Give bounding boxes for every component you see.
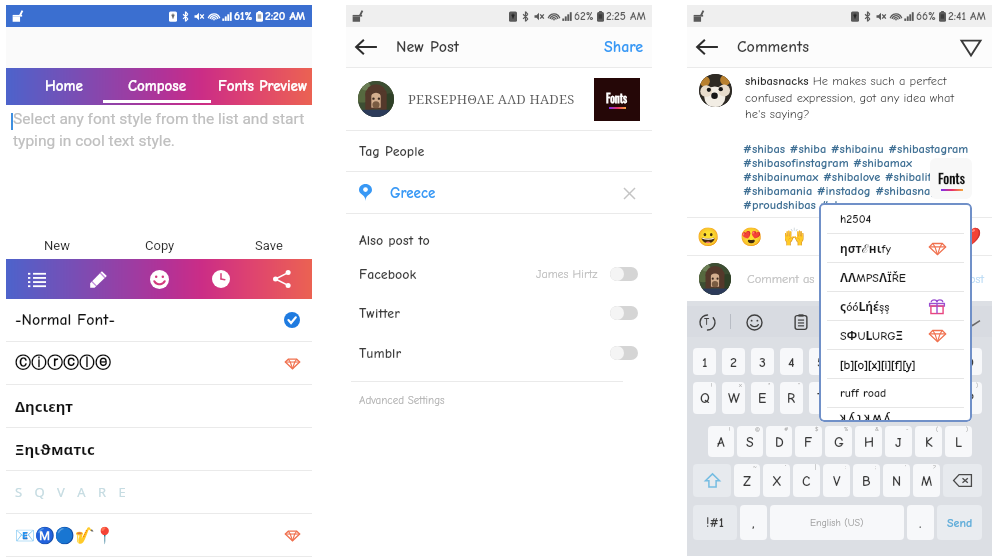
button[interactable]: Collapse keyboard [962, 312, 982, 332]
button[interactable]: 7 [868, 348, 892, 375]
button[interactable]: Fonts [930, 158, 972, 199]
button[interactable]: Back [352, 33, 380, 61]
button[interactable]: Post [963, 272, 984, 286]
button[interactable]: ❤️ [948, 218, 992, 255]
button[interactable]: New [27, 232, 87, 258]
button[interactable]: Clipboard [791, 312, 811, 332]
button[interactable]: [b][o][x][i][f][y] [819, 350, 972, 378]
button[interactable]: List [6, 259, 68, 299]
button[interactable]: Δηϲιεηт [6, 385, 312, 427]
button[interactable]: Ξηιϑмαтιϲ [6, 428, 312, 470]
button[interactable]: Back [693, 33, 721, 61]
button[interactable]: G [825, 426, 852, 457]
button[interactable]: E [751, 382, 774, 414]
button[interactable]: J [885, 426, 912, 457]
staticText: Compose [128, 77, 187, 94]
button[interactable]: 😂 [860, 218, 904, 255]
button[interactable]: Tag People [346, 131, 652, 171]
button[interactable]: C [793, 464, 820, 497]
button[interactable]: Share [251, 259, 312, 299]
button[interactable]: English (US) [770, 505, 904, 540]
button[interactable]: Ⓒⓘⓡⓒⓛⓔ [6, 342, 312, 384]
button[interactable]: Y [838, 382, 862, 414]
button[interactable]: O [928, 382, 952, 414]
button[interactable]: . [907, 505, 934, 540]
button[interactable]: Translate [697, 312, 717, 332]
button[interactable]: S [737, 426, 763, 457]
button[interactable]: Z [734, 464, 760, 497]
button[interactable]: Q [693, 382, 716, 414]
button[interactable]: Greece [346, 172, 652, 213]
button[interactable]: Send [958, 34, 984, 60]
button[interactable]: U [868, 382, 892, 414]
button[interactable]: Fonts Preview [218, 68, 318, 105]
button[interactable]: Facebook [346, 257, 652, 291]
button[interactable]: Save [239, 232, 299, 258]
button[interactable]: ΛΛMPSΛÏŘE [819, 263, 972, 291]
button[interactable]: SΦUԼURGΞ [819, 321, 972, 349]
button[interactable]: 4 [780, 348, 803, 375]
staticText: 2:20 AM [265, 10, 306, 23]
button[interactable]: A [708, 426, 734, 457]
button[interactable]: ruff road [819, 379, 972, 407]
button[interactable]: L [945, 426, 972, 457]
button[interactable]: Share [596, 32, 652, 62]
button[interactable]: Send [937, 505, 982, 540]
button[interactable]: S Q V A R E [6, 471, 312, 513]
button[interactable]: N [883, 464, 910, 497]
button[interactable]: ςóóԼήέşş [819, 292, 972, 320]
button[interactable]: 6 [838, 348, 862, 375]
button[interactable]: I [898, 382, 922, 414]
staticText: H [864, 434, 874, 450]
button[interactable]: Shift [693, 464, 731, 497]
button[interactable]: 😀 [687, 218, 730, 255]
button[interactable]: K [915, 426, 942, 457]
button[interactable]: Emoji [129, 259, 190, 299]
button[interactable]: 2 [722, 348, 745, 375]
button[interactable]: Copy [130, 232, 190, 258]
staticText: Twitter [359, 305, 400, 321]
button[interactable]: ησтℰнιfy [819, 234, 972, 262]
button[interactable]: !#1 [693, 505, 737, 540]
button[interactable]: 😘 [904, 218, 948, 255]
button[interactable]: M [913, 464, 940, 497]
button[interactable]: 9 [928, 348, 952, 375]
button[interactable]: B [853, 464, 880, 497]
button[interactable]: T [809, 382, 832, 414]
button[interactable]: 📧Ⓜ️🔵🎷📍 [6, 514, 312, 556]
button[interactable]: X [763, 464, 790, 497]
button[interactable]: H [855, 426, 882, 457]
button[interactable]: D [766, 426, 792, 457]
button[interactable]: Home [26, 68, 101, 105]
button[interactable]: Compose [103, 68, 211, 105]
button[interactable]: 5 [809, 348, 832, 375]
button[interactable]: F [795, 426, 822, 457]
button[interactable]: Edit [68, 259, 129, 299]
button[interactable]: Remove location [619, 183, 639, 203]
staticText: ʞ ʎ ʇ ʞ ʍ ʎ [840, 409, 890, 422]
staticText: ςóóԼήέşş [840, 298, 890, 314]
button[interactable]: 😊 [816, 218, 860, 255]
button[interactable]: P [958, 382, 982, 414]
button[interactable]: 0 [958, 348, 982, 375]
button[interactable]: Backspace [943, 464, 982, 497]
button[interactable]: Emoji [744, 312, 764, 332]
button[interactable]: Recent [190, 259, 251, 299]
button[interactable]: W [722, 382, 745, 414]
button[interactable]: V [823, 464, 850, 497]
button[interactable]: 🙌 [773, 218, 816, 255]
staticText: ; [875, 464, 877, 471]
button[interactable]: 3 [751, 348, 774, 375]
button[interactable]: , [740, 505, 767, 540]
button[interactable]: Twitter [346, 296, 652, 330]
button[interactable]: R [780, 382, 803, 414]
button[interactable]: -Normal Font- [6, 299, 312, 341]
button[interactable]: Tumblr [346, 336, 652, 370]
button[interactable]: ʞ ʎ ʇ ʞ ʍ ʎ [819, 408, 972, 422]
button[interactable]: h2504 [819, 205, 972, 233]
staticText: T [704, 316, 710, 328]
staticText: X [772, 473, 782, 489]
button[interactable]: 1 [693, 348, 716, 375]
button[interactable]: 8 [898, 348, 922, 375]
button[interactable]: 😍 [730, 218, 773, 255]
